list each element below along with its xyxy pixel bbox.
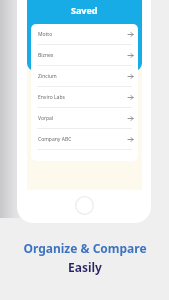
staticText: Zincium bbox=[38, 73, 57, 80]
button[interactable]: Zincium bbox=[31, 66, 138, 87]
button[interactable]: Motto bbox=[31, 24, 138, 45]
staticText: Organize & Compare bbox=[23, 240, 147, 256]
staticText: Motto bbox=[38, 31, 53, 38]
button[interactable]: Enviro Labs bbox=[31, 87, 138, 108]
staticText: Biznex bbox=[38, 52, 54, 59]
button[interactable]: Biznex bbox=[31, 45, 138, 66]
staticText: Company ABC bbox=[38, 136, 72, 143]
button[interactable]: Vorpal bbox=[31, 108, 138, 129]
button[interactable]: Company ABC bbox=[31, 129, 138, 150]
staticText: Enviro Labs bbox=[38, 94, 65, 101]
staticText: Easily bbox=[68, 259, 102, 275]
staticText: Saved bbox=[71, 4, 98, 16]
staticText: Vorpal bbox=[38, 115, 54, 122]
